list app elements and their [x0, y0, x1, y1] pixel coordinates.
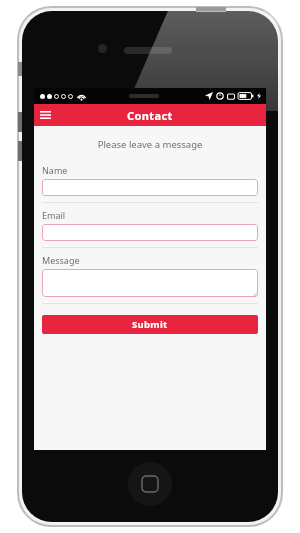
staticText: Submit — [132, 318, 168, 331]
staticText: Name — [42, 164, 68, 176]
staticText: Email — [42, 209, 66, 221]
button[interactable] — [42, 224, 258, 241]
button[interactable] — [42, 179, 258, 196]
staticText: Please leave a message — [42, 138, 258, 151]
staticText: Contact — [127, 108, 173, 123]
button[interactable]: Submit — [42, 315, 258, 334]
button[interactable]: Open navigation menu — [34, 104, 56, 126]
button[interactable] — [42, 269, 258, 297]
staticText: Message — [42, 254, 80, 266]
